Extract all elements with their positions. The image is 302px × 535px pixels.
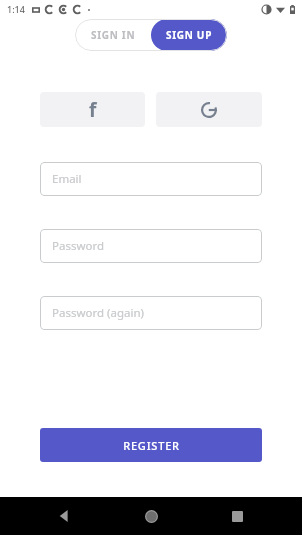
button[interactable]: SIGN IN xyxy=(75,19,151,51)
staticText: Password (again) xyxy=(52,305,144,321)
staticText: SIGN IN xyxy=(91,28,136,42)
button[interactable]: Sign up with Facebook xyxy=(40,92,145,127)
button[interactable]: Recent apps xyxy=(220,499,254,533)
button[interactable]: Password (again) xyxy=(40,296,262,330)
button[interactable]: Home xyxy=(134,499,168,533)
staticText: f xyxy=(89,97,97,123)
button[interactable]: Sign up with Google xyxy=(156,92,262,127)
button[interactable]: REGISTER xyxy=(40,428,262,462)
staticText: 1:14 xyxy=(7,3,25,15)
button[interactable]: Back xyxy=(48,499,82,533)
button[interactable]: SIGN UP xyxy=(151,19,227,51)
staticText: Email xyxy=(52,171,82,187)
staticText: REGISTER xyxy=(123,438,180,453)
staticText: SIGN UP xyxy=(166,28,213,42)
button[interactable]: Email xyxy=(40,162,262,196)
button[interactable]: Password xyxy=(40,229,262,263)
staticText: Password xyxy=(52,238,105,254)
